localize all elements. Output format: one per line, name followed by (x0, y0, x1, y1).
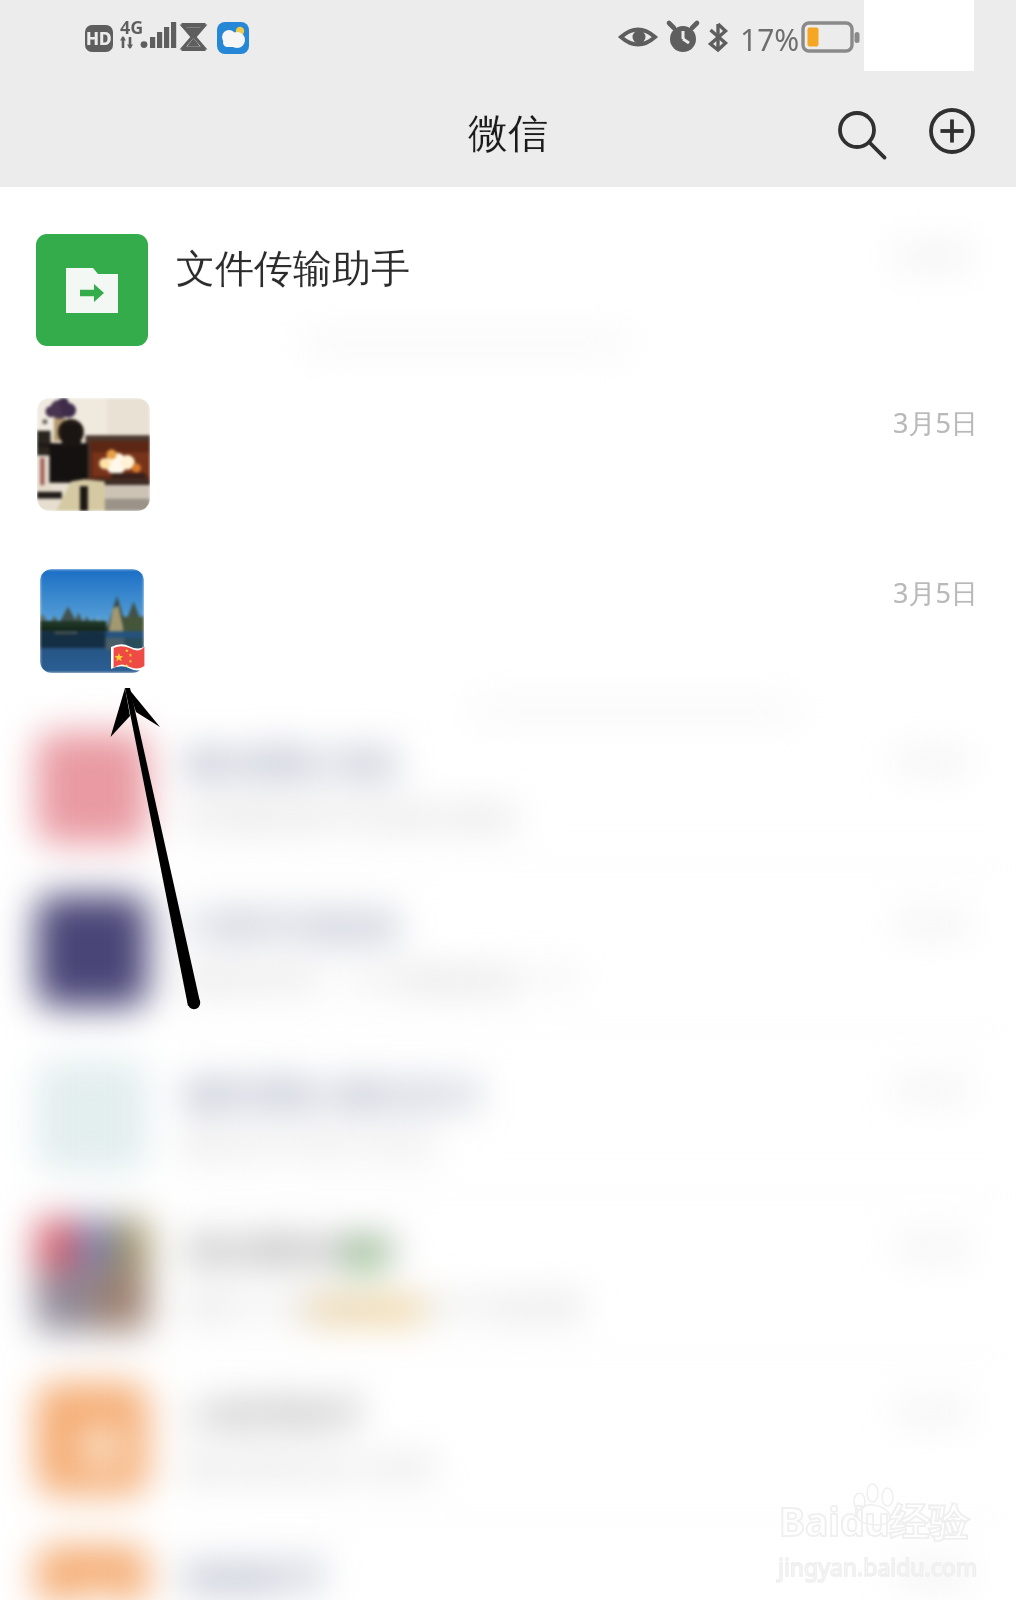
staticText: 微信 (468, 108, 548, 158)
button[interactable] (0, 1195, 1016, 1355)
staticText: 3月5日 (894, 1558, 970, 1591)
staticText: 小程序助手 (184, 1392, 364, 1437)
button[interactable]: 3月5日 (0, 380, 1016, 530)
staticText: 17% (740, 19, 800, 60)
button[interactable]: Search (812, 85, 884, 157)
button[interactable] (0, 708, 1016, 868)
button[interactable]: 文件传输助手 (0, 215, 1016, 365)
button[interactable] (0, 1036, 1016, 1196)
button[interactable]: 3月5日 (0, 550, 1016, 700)
staticText: HD (86, 27, 112, 50)
staticText: 文件传输助手 (176, 244, 410, 293)
staticText: 3月5日 (893, 404, 978, 441)
button[interactable] (0, 1522, 1016, 1600)
button[interactable] (0, 1359, 1016, 1519)
staticText: 服务通知 微信支付 (184, 1069, 482, 1118)
button[interactable]: Add (907, 85, 979, 157)
staticText: [图片] 大家好呀 今天天气很好啊 (184, 1287, 581, 1325)
staticText: 订阅号消息组 (184, 904, 400, 949)
staticText: 购物助手 (184, 1555, 328, 1600)
staticText: jingyan.baidu.com (778, 1551, 978, 1582)
staticText: 朋友圈相册群 (184, 1228, 400, 1273)
staticText: 3月5日 (893, 574, 978, 611)
staticText: 微信团队消息 (184, 741, 400, 786)
staticText: 4G (120, 15, 144, 40)
button[interactable] (0, 871, 1016, 1031)
staticText: Baidu经验 (779, 1494, 968, 1547)
staticText: 新闻早班车：今天要闻速览一下 (184, 963, 576, 998)
